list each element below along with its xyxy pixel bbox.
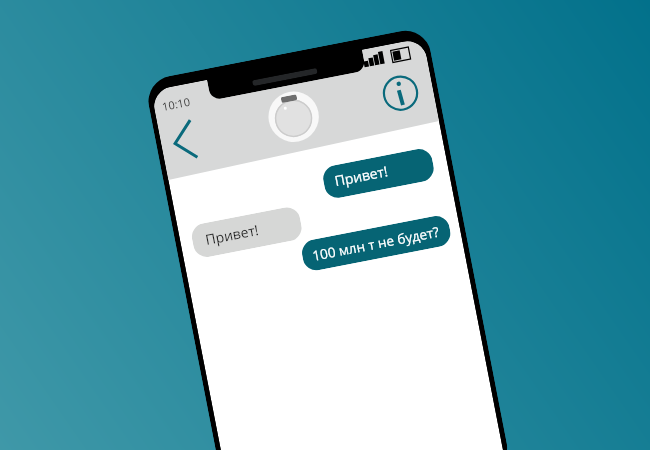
staticText: Привет! xyxy=(333,161,389,190)
button[interactable]: 100 млн т не будет? xyxy=(300,214,453,273)
button[interactable]: Привет! xyxy=(189,205,304,259)
staticText: Привет! xyxy=(204,220,260,249)
staticText: 100 млн т не будет? xyxy=(311,222,441,265)
staticText: 10:10 xyxy=(161,94,192,114)
button[interactable]: Back xyxy=(167,116,201,165)
button[interactable]: Contact avatar xyxy=(262,84,327,150)
button[interactable]: Привет! xyxy=(321,147,436,200)
button[interactable]: Info xyxy=(380,72,422,114)
